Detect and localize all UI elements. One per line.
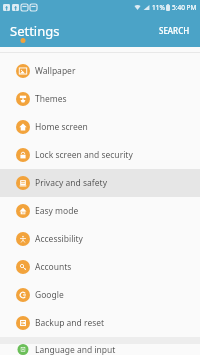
button[interactable]: Language and input — [0, 344, 200, 355]
staticText: Wallpaper — [35, 65, 76, 77]
staticText: Home screen — [35, 121, 88, 133]
staticText: Privacy and safety — [35, 177, 107, 189]
staticText: 5:40 PM — [172, 3, 197, 12]
button[interactable]: Backup and reset — [0, 309, 200, 337]
button[interactable]: Privacy and safety — [0, 169, 200, 197]
button[interactable]: Easy mode — [0, 197, 200, 225]
staticText: Accessibility — [35, 233, 83, 245]
staticText: Lock screen and security — [35, 149, 133, 161]
button[interactable]: Accounts — [0, 253, 200, 281]
button[interactable]: Themes — [0, 85, 200, 113]
staticText: Backup and reset — [35, 317, 105, 329]
button[interactable]: Accessibility — [0, 225, 200, 253]
button[interactable]: Google — [0, 281, 200, 309]
staticText: Themes — [35, 93, 67, 105]
staticText: Settings — [10, 22, 60, 40]
button[interactable]: SEARCH — [149, 19, 200, 42]
staticText: Google — [35, 289, 64, 301]
button[interactable]: Wallpaper — [0, 57, 200, 85]
staticText: Easy mode — [35, 205, 79, 217]
button[interactable]: Lock screen and security — [0, 141, 200, 169]
staticText: 11% — [152, 3, 165, 12]
staticText: Language and input — [35, 344, 116, 355]
button[interactable]: Home screen — [0, 113, 200, 141]
staticText: Accounts — [35, 261, 72, 273]
staticText: SEARCH — [159, 25, 190, 36]
